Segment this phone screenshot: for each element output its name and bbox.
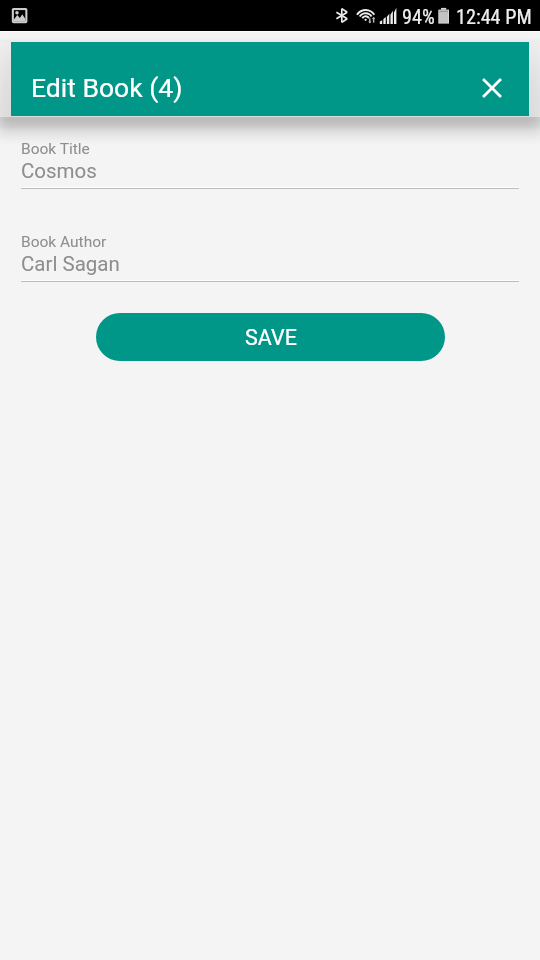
button[interactable]: SAVE bbox=[96, 313, 445, 361]
staticText: Edit Book (4) bbox=[31, 72, 183, 103]
staticText: Book Author bbox=[21, 233, 107, 251]
button[interactable]: Close bbox=[471, 67, 513, 109]
staticText: 94% bbox=[402, 5, 435, 29]
staticText: SAVE bbox=[245, 325, 297, 350]
staticText: Cosmos bbox=[21, 159, 97, 183]
staticText: Book Title bbox=[21, 140, 90, 158]
staticText: 12:44 PM bbox=[456, 5, 532, 29]
staticText: Carl Sagan bbox=[21, 252, 120, 276]
